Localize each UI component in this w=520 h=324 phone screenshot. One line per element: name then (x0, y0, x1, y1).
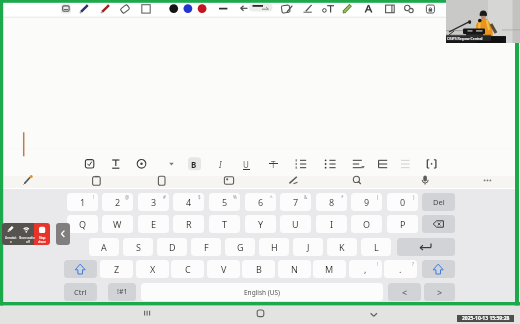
button[interactable]: Q (67, 215, 98, 233)
button[interactable]: N (278, 260, 311, 278)
button[interactable] (135, 306, 159, 324)
button[interactable]: I (316, 215, 347, 233)
button[interactable]: L (361, 238, 391, 256)
button[interactable] (478, 177, 498, 189)
button[interactable] (401, 2, 417, 17)
button[interactable] (320, 154, 338, 174)
button[interactable]: B (242, 260, 275, 278)
button[interactable] (253, 2, 269, 17)
button[interactable] (186, 154, 204, 174)
button[interactable]: V (207, 260, 240, 278)
button[interactable]: S (123, 238, 153, 256)
button[interactable] (396, 154, 414, 174)
button[interactable] (278, 2, 294, 17)
button[interactable]: K (327, 238, 357, 256)
button[interactable]: OSiPS Re:pow Central (446, 0, 520, 43)
button[interactable] (415, 177, 435, 189)
button[interactable] (86, 177, 106, 189)
button[interactable] (81, 154, 99, 174)
button[interactable] (76, 2, 92, 17)
button[interactable]: J (293, 238, 323, 256)
button[interactable]: 8 (316, 193, 347, 211)
button[interactable] (237, 154, 255, 174)
button[interactable]: C (171, 260, 204, 278)
button[interactable] (339, 2, 355, 17)
button[interactable] (138, 2, 154, 17)
button[interactable]: P (387, 215, 418, 233)
button[interactable] (373, 154, 391, 174)
button[interactable] (422, 260, 455, 278)
button[interactable] (58, 2, 74, 17)
button[interactable] (219, 177, 239, 189)
button[interactable]: < (388, 283, 421, 301)
button[interactable] (248, 306, 272, 324)
button[interactable] (64, 260, 97, 278)
button[interactable]: M (313, 260, 346, 278)
button[interactable]: > (424, 283, 455, 301)
button[interactable]: , (349, 260, 382, 278)
button[interactable] (347, 177, 367, 189)
button[interactable] (34, 223, 50, 245)
button[interactable] (17, 177, 37, 189)
button[interactable]: . (384, 260, 417, 278)
button[interactable] (163, 154, 181, 174)
button[interactable] (362, 306, 386, 324)
staticText: K (339, 241, 345, 253)
button[interactable] (98, 2, 114, 17)
button[interactable] (56, 223, 70, 245)
button[interactable]: Z (100, 260, 133, 278)
button[interactable]: T (209, 215, 240, 233)
button[interactable]: E (138, 215, 169, 233)
button[interactable] (300, 2, 316, 17)
button[interactable]: U (280, 215, 311, 233)
button[interactable] (235, 2, 251, 17)
button[interactable]: !#1 (108, 283, 136, 301)
staticText: W (113, 218, 122, 230)
button[interactable] (382, 2, 398, 17)
button[interactable]: 3 (138, 193, 169, 211)
button[interactable]: Y (245, 215, 276, 233)
button[interactable] (180, 2, 196, 17)
button[interactable]: D (157, 238, 187, 256)
button[interactable] (423, 154, 441, 174)
button[interactable]: O (351, 215, 382, 233)
button[interactable] (321, 2, 337, 17)
button[interactable] (397, 238, 455, 256)
button[interactable]: W (102, 215, 133, 233)
button[interactable]: R (173, 215, 204, 233)
button[interactable]: A (89, 238, 119, 256)
button[interactable]: 1 (67, 193, 98, 211)
button[interactable] (422, 215, 455, 233)
button[interactable]: 2 (102, 193, 133, 211)
button[interactable] (2, 223, 34, 245)
button[interactable]: G (225, 238, 255, 256)
button[interactable] (166, 2, 182, 17)
button[interactable]: H (259, 238, 289, 256)
button[interactable]: Del (422, 193, 455, 211)
button[interactable]: 7 (280, 193, 311, 211)
button[interactable]: 4 (173, 193, 204, 211)
button[interactable] (133, 154, 151, 174)
button[interactable] (0, 3, 520, 17)
button[interactable]: X (136, 260, 169, 278)
button[interactable] (117, 2, 133, 17)
button[interactable] (265, 154, 283, 174)
button[interactable]: F (191, 238, 221, 256)
button[interactable]: 6 (245, 193, 276, 211)
button[interactable] (107, 154, 125, 174)
button[interactable] (194, 2, 210, 17)
button[interactable]: Ctrl (64, 283, 97, 301)
staticText: 2 (115, 196, 121, 208)
button[interactable]: 9 (351, 193, 382, 211)
button[interactable] (212, 154, 230, 174)
button[interactable] (422, 2, 438, 17)
button[interactable] (291, 154, 309, 174)
button[interactable] (361, 2, 377, 17)
button[interactable]: 5 (209, 193, 240, 211)
button[interactable] (152, 177, 172, 189)
button[interactable] (284, 177, 304, 189)
button[interactable] (348, 154, 366, 174)
button[interactable]: 0 (387, 193, 418, 211)
button[interactable]: English (US) (141, 283, 383, 301)
button[interactable] (215, 2, 231, 17)
